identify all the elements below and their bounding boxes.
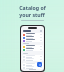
- button[interactable]: [22, 39, 43, 42]
- button[interactable]: [22, 33, 43, 36]
- button[interactable]: [22, 48, 43, 51]
- button[interactable]: [22, 63, 43, 66]
- staticText: Catalog of: [19, 4, 46, 11]
- staticText: your stuff: [19, 11, 45, 18]
- button[interactable]: [22, 55, 43, 58]
- button[interactable]: Add item: [37, 62, 42, 67]
- button[interactable]: [22, 45, 43, 48]
- button[interactable]: [22, 66, 43, 69]
- button[interactable]: [22, 36, 43, 39]
- button[interactable]: [22, 58, 43, 61]
